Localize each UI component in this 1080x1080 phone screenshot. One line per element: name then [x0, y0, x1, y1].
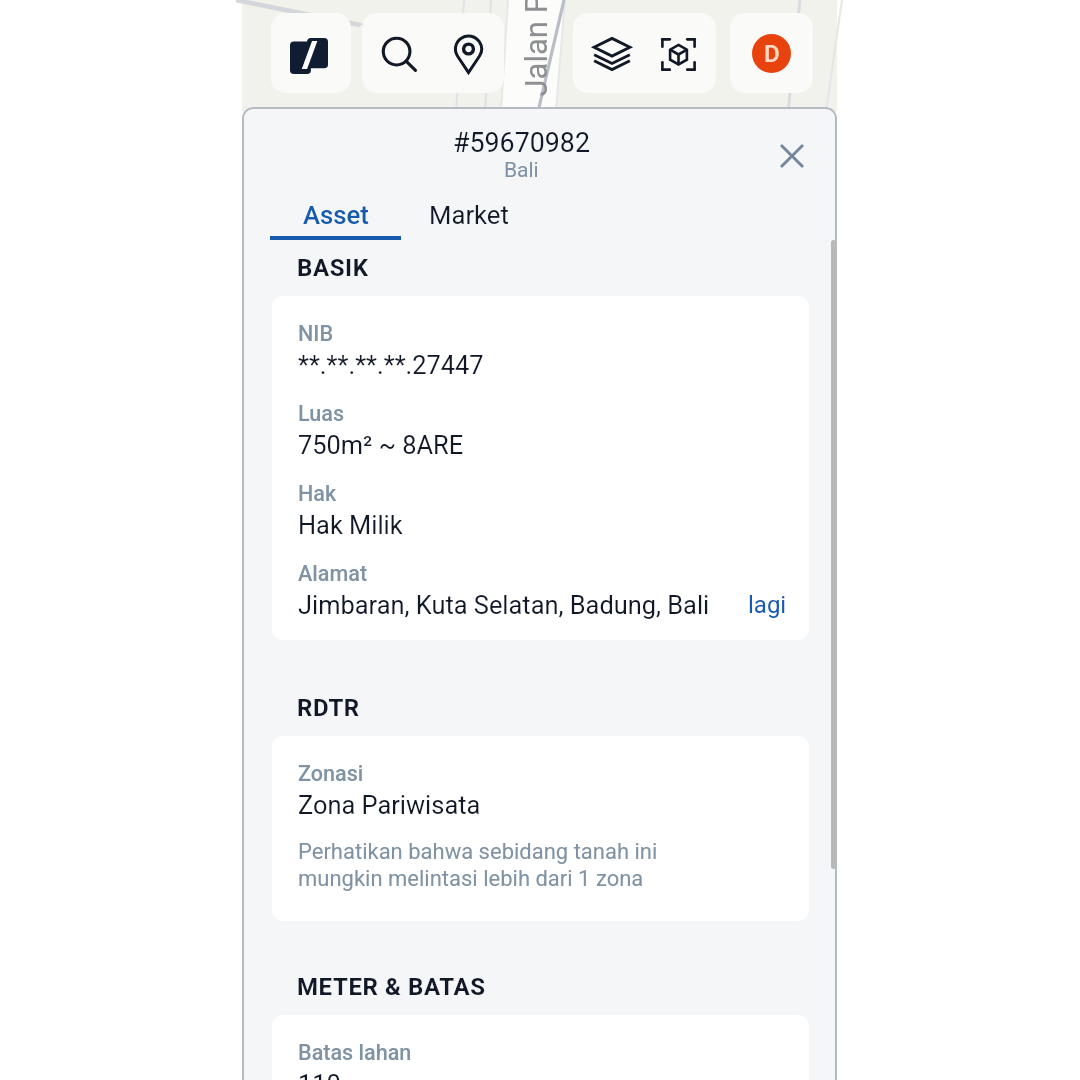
button[interactable]: 3D view	[644, 13, 716, 93]
button[interactable]: Asset	[270, 200, 401, 245]
button[interactable]: Close	[770, 134, 814, 178]
staticText: Hak Milik	[298, 510, 403, 540]
staticText: Asset	[303, 200, 369, 230]
staticText: Jimbaran, Kuta Selatan, Badung, Bali	[298, 590, 710, 620]
button[interactable]: Home	[271, 13, 351, 93]
staticText: lagi	[748, 591, 787, 619]
staticText: BASIK	[297, 254, 369, 282]
staticText: METER & BATAS	[297, 973, 486, 1001]
staticText: D	[764, 40, 780, 68]
staticText: Batas lahan	[298, 1040, 412, 1065]
button[interactable]: My location	[433, 13, 504, 93]
staticText: Zonasi	[298, 761, 364, 786]
button[interactable]: lagi	[742, 591, 787, 619]
staticText: RDTR	[297, 694, 360, 722]
button[interactable]: Map layers	[573, 13, 644, 93]
button[interactable]: Search	[362, 13, 504, 93]
button[interactable]: Market	[401, 200, 536, 245]
staticText: Perhatikan bahwa sebidang tanah ini mung…	[298, 839, 658, 891]
staticText: Alamat	[298, 561, 368, 586]
staticText: Bali	[504, 158, 539, 183]
button[interactable]: Search	[362, 13, 433, 93]
button[interactable]: Map layers	[573, 13, 716, 93]
staticText: Zona Pariwisata	[298, 790, 481, 820]
staticText: #59670982	[453, 127, 590, 158]
staticText: 750m² ~ 8ARE	[298, 430, 464, 460]
staticText: Hak	[298, 481, 337, 506]
staticText: 110	[298, 1069, 341, 1080]
button[interactable]: Profile	[730, 13, 813, 93]
staticText: Market	[429, 200, 509, 230]
staticText: **.**.**.**.27447	[298, 350, 484, 380]
staticText: Luas	[298, 401, 345, 426]
staticText: NIB	[298, 321, 334, 346]
staticText: Jalan P	[517, 0, 553, 96]
